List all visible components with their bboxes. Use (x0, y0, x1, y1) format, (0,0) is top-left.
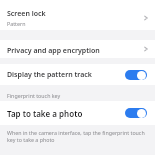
staticText: Fingerprint touch key (7, 92, 61, 99)
button[interactable]: Display the pattern track (0, 64, 155, 85)
staticText: Privacy and app encryption (7, 46, 100, 56)
button[interactable] (125, 108, 147, 118)
button[interactable]: Privacy and app encryption (0, 40, 155, 58)
staticText: Screen lock (7, 9, 46, 19)
button[interactable]: Tap to take a photo (0, 101, 155, 125)
staticText: Tap to take a photo (7, 108, 83, 119)
staticText: Display the pattern track (7, 70, 92, 80)
staticText: When in the camera interface, tap the fi… (7, 129, 145, 143)
button[interactable] (125, 70, 147, 80)
staticText: Pattern (7, 20, 26, 27)
button[interactable]: Screen lock (0, 0, 155, 30)
